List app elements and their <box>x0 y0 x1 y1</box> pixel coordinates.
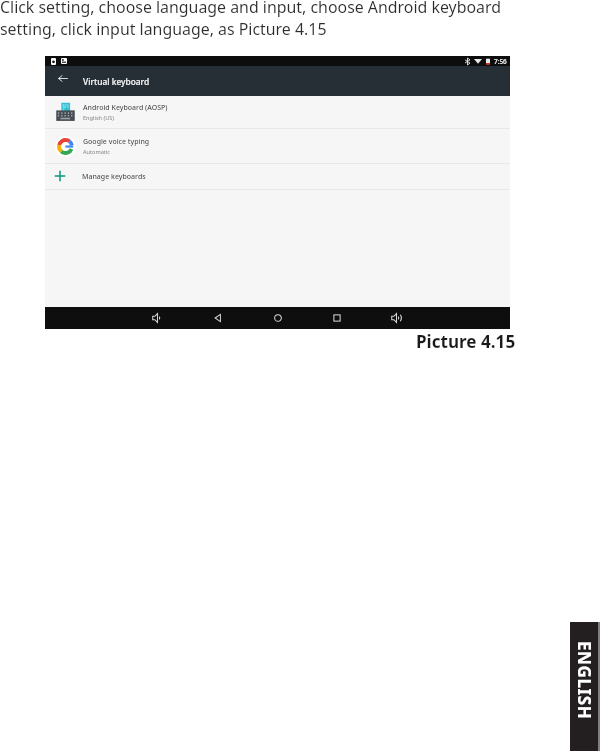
button[interactable]: Home <box>266 307 290 329</box>
staticText: Picture 4.15 <box>416 330 516 353</box>
staticText: Android Keyboard (AOSP) <box>83 103 168 113</box>
staticText: 7:56 <box>494 57 507 66</box>
staticText: Google voice typing <box>83 137 150 147</box>
button[interactable]: Volume up <box>385 307 409 329</box>
button[interactable]: Recents <box>325 307 349 329</box>
button[interactable]: Back <box>206 307 230 329</box>
button[interactable]: Volume down <box>146 307 170 329</box>
button[interactable]: Google voice typing <box>45 129 510 163</box>
staticText: Manage keyboards <box>82 172 146 182</box>
button[interactable]: Back <box>55 70 71 86</box>
button[interactable]: Manage keyboards <box>45 164 510 189</box>
staticText: Virtual keyboard <box>83 76 150 87</box>
staticText: English (US) <box>83 114 115 122</box>
button[interactable]: Android Keyboard (AOSP) <box>45 96 510 128</box>
staticText: Click setting, choose language and input… <box>0 0 502 18</box>
staticText: Automatic <box>83 148 110 156</box>
staticText: setting, click input language, as Pictur… <box>0 18 327 40</box>
staticText: ENGLISH <box>573 641 596 720</box>
